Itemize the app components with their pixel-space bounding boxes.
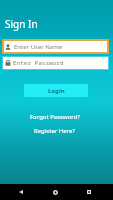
staticText: Forgot Password? [30, 113, 80, 121]
button[interactable]: Forgot Password? [0, 112, 111, 122]
button[interactable]: Enter User Name [2, 39, 109, 54]
staticText: Sign In [5, 17, 38, 31]
staticText: Enter Password [13, 59, 64, 67]
staticText: Enter User Name [14, 43, 63, 51]
button[interactable]: Register Here? [0, 126, 111, 136]
button[interactable]: Login [24, 84, 88, 97]
button[interactable]: Home [47, 184, 64, 200]
staticText: Login [48, 87, 65, 95]
button[interactable]: Back [13, 184, 29, 200]
staticText: Register Here? [34, 127, 75, 135]
button[interactable]: Enter Password [2, 56, 109, 70]
button[interactable]: Recents [80, 184, 97, 200]
